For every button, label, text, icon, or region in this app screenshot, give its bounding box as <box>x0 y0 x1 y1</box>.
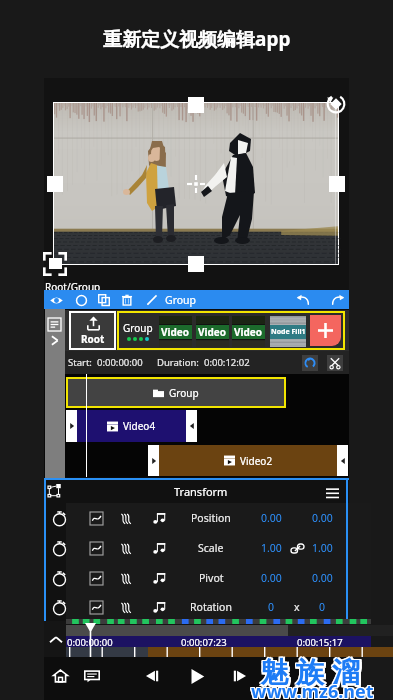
staticText: x <box>294 600 300 614</box>
button[interactable]: Pivot <box>44 563 349 593</box>
staticText: 重新定义视频编辑app <box>103 26 291 52</box>
staticText: 魅族溜 <box>258 657 366 692</box>
staticText: www.mz6.net <box>251 680 374 700</box>
staticText: 0:00:00:00 <box>97 356 143 369</box>
staticText: Video2 <box>240 454 273 468</box>
button[interactable]: Video <box>196 316 229 347</box>
button[interactable]: Undo <box>294 291 312 309</box>
staticText: Node Fill1 <box>271 327 306 337</box>
button[interactable]: Video4 <box>66 410 197 442</box>
staticText: Group <box>169 386 199 400</box>
staticText: 1.00 <box>261 541 282 555</box>
staticText: 0:00:00:00 <box>67 636 113 647</box>
staticText: Video <box>198 325 227 339</box>
button[interactable]: Node Fill1 <box>270 316 306 347</box>
staticText: www.mz6.net <box>251 678 374 700</box>
staticText: 魅族溜 <box>258 654 366 689</box>
staticText: Scale <box>198 541 224 555</box>
staticText: 0.00 <box>312 511 333 525</box>
button[interactable]: Rotation <box>44 593 349 621</box>
staticText: 魅族溜 <box>255 654 363 689</box>
staticText: 0:00:07:23 <box>181 636 227 647</box>
staticText: Duration: <box>157 356 199 369</box>
staticText: Transform <box>174 484 228 499</box>
staticText: Pivot <box>199 571 224 585</box>
button[interactable]: Scale <box>44 533 349 563</box>
button[interactable]: Video <box>232 316 265 347</box>
staticText: Root/Group <box>45 280 101 294</box>
staticText: 0 <box>268 600 275 614</box>
button[interactable]: Loop <box>302 355 318 371</box>
staticText: 0.00 <box>261 511 282 525</box>
button[interactable]: Delete <box>118 291 136 309</box>
staticText: Group <box>165 293 197 307</box>
staticText: 1.00 <box>312 541 333 555</box>
button[interactable]: Comments <box>79 663 105 689</box>
button[interactable]: Collapse <box>49 633 63 647</box>
button[interactable]: Root <box>71 313 114 348</box>
staticText: www.mz6.net <box>250 678 373 700</box>
button[interactable]: Edit <box>143 291 161 309</box>
button[interactable]: Transform tool <box>48 484 63 499</box>
staticText: 魅族溜 <box>256 654 364 689</box>
staticText: www.mz6.net <box>250 680 373 700</box>
button[interactable]: Add node <box>310 315 341 346</box>
staticText: www.mz6.net <box>252 679 375 700</box>
staticText: 0.00 <box>261 571 282 585</box>
staticText: 魅族溜 <box>256 655 364 690</box>
button[interactable]: Redo <box>329 291 347 309</box>
staticText: 0.00 <box>312 571 333 585</box>
button[interactable]: Layers <box>48 318 61 331</box>
button[interactable]: Next frame <box>228 663 254 689</box>
staticText: Start: <box>68 356 92 369</box>
button[interactable]: Cut <box>327 355 343 371</box>
staticText: www.mz6.net <box>251 679 374 700</box>
button[interactable]: Position <box>44 503 349 533</box>
staticText: 魅族溜 <box>255 657 363 692</box>
staticText: Rotation <box>190 600 232 614</box>
staticText: 0:00:12:02 <box>204 356 250 369</box>
staticText: www.mz6.net <box>252 678 375 700</box>
staticText: 0 <box>319 600 326 614</box>
staticText: 魅族溜 <box>256 657 364 692</box>
staticText: Group <box>123 321 153 335</box>
button[interactable]: Solo <box>72 291 90 309</box>
button[interactable]: Video <box>159 316 192 347</box>
staticText: Video4 <box>123 419 156 433</box>
button[interactable]: Home <box>47 663 73 689</box>
button[interactable]: Video2 <box>148 445 348 476</box>
staticText: 魅族溜 <box>258 655 366 690</box>
button[interactable]: Visibility <box>47 291 65 309</box>
staticText: Root <box>81 332 105 346</box>
button[interactable]: Group <box>68 379 284 406</box>
staticText: www.mz6.net <box>250 679 373 700</box>
button[interactable]: Copy <box>95 291 113 309</box>
button[interactable]: Play <box>184 663 210 689</box>
staticText: 魅族溜 <box>255 655 363 690</box>
button[interactable]: Previous frame <box>138 663 164 689</box>
button[interactable]: Menu <box>324 484 340 500</box>
staticText: www.mz6.net <box>252 680 375 700</box>
button[interactable]: Rotate <box>325 93 347 115</box>
staticText: Video <box>234 325 263 339</box>
staticText: Position <box>191 511 231 525</box>
staticText: Video <box>161 325 190 339</box>
button[interactable]: Group <box>119 313 157 348</box>
button[interactable]: Expand <box>48 334 61 347</box>
staticText: 0:00:15:17 <box>297 636 343 647</box>
